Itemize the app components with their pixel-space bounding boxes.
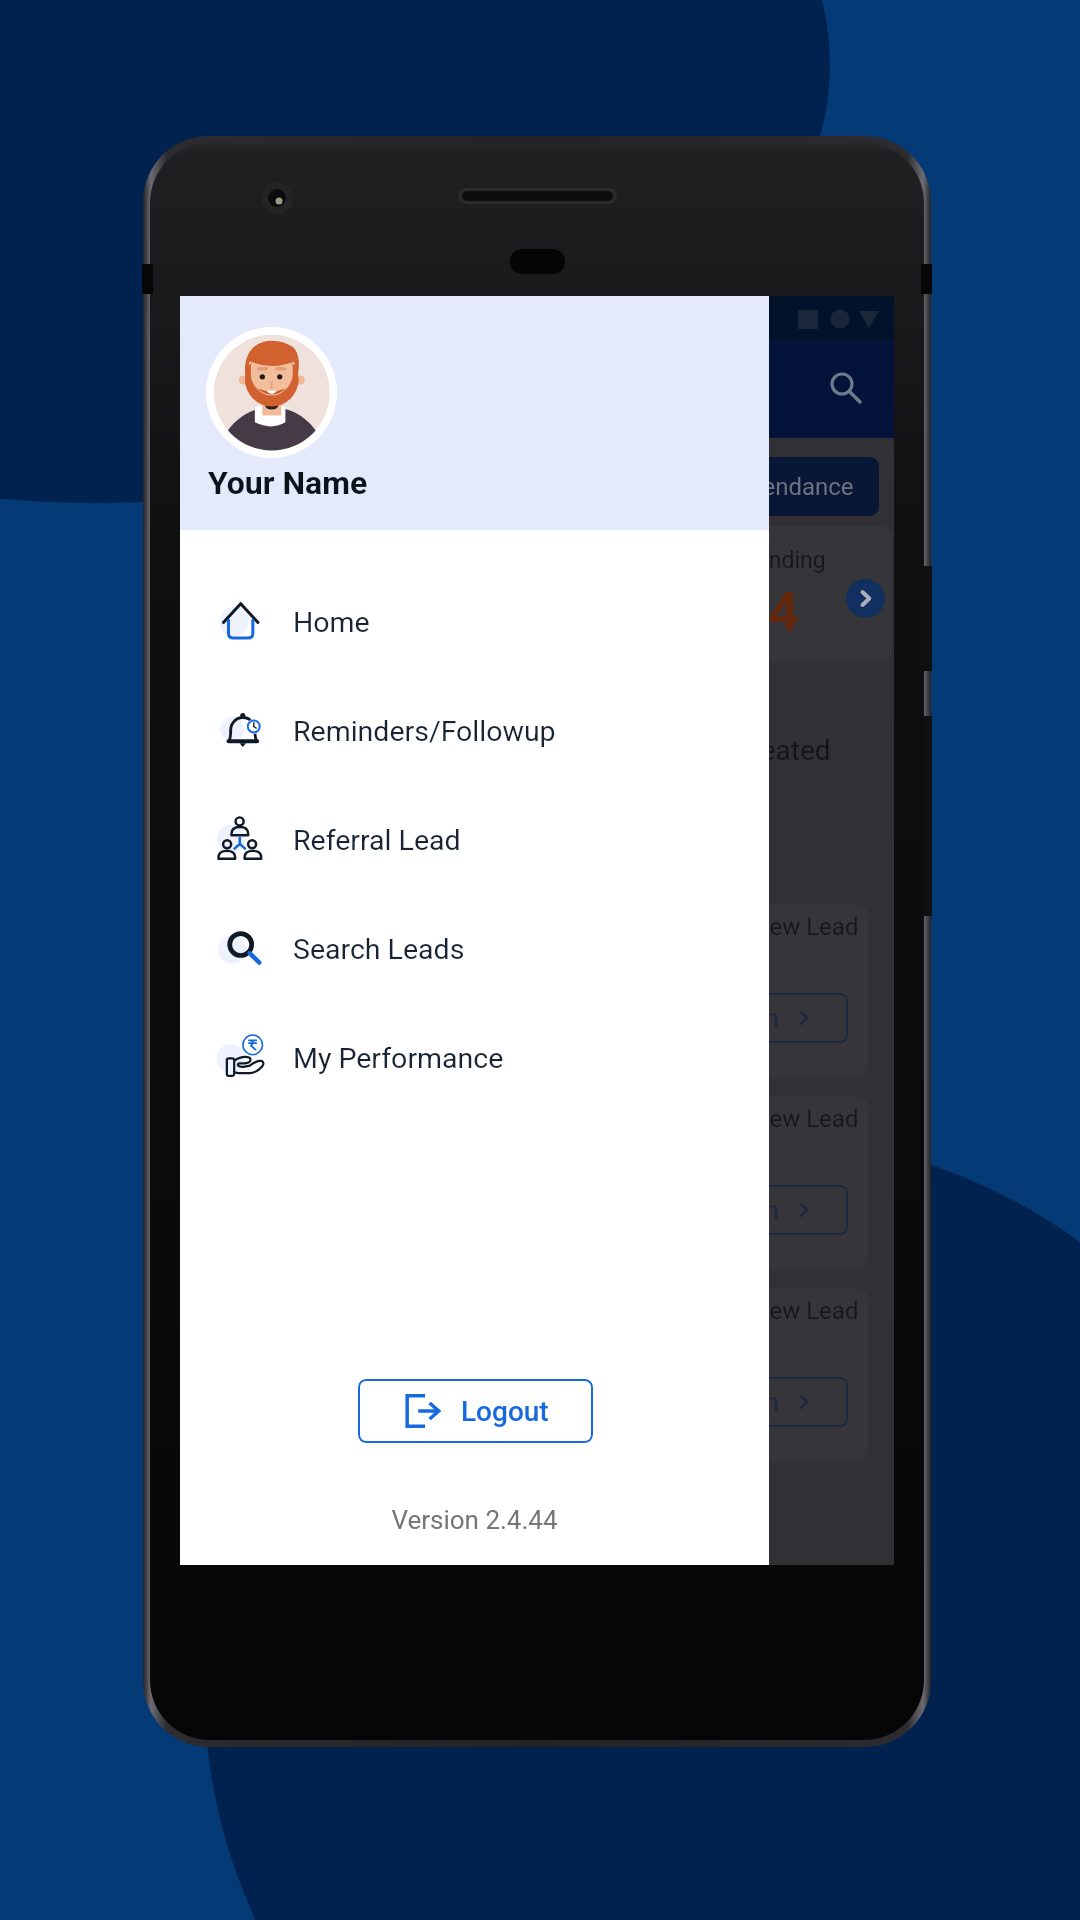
button[interactable]: Search [820, 358, 872, 410]
button[interactable]: Status : New Lead [206, 1288, 868, 1461]
staticText: Status : New Lead [666, 1297, 859, 1325]
button[interactable]: Open leads [846, 579, 885, 618]
staticText: Take Action [648, 1004, 779, 1033]
staticText: Recently Created [620, 734, 831, 767]
staticText: Take Action [648, 1388, 779, 1417]
staticText: 4 [768, 580, 799, 643]
staticText: View Appointment [214, 1500, 459, 1535]
staticText: Total Leads pending [619, 547, 826, 574]
button[interactable]: Search Leads [180, 895, 769, 1004]
staticText: Take Action [648, 1196, 779, 1225]
button[interactable]: Total Leads pending [190, 526, 892, 663]
button[interactable]: Reminders/Followup [180, 677, 769, 786]
staticText: Your Name [208, 464, 368, 502]
button[interactable]: Take Action [628, 993, 848, 1043]
button[interactable]: View Appointment [206, 1480, 900, 1554]
button[interactable]: Referral Lead [180, 786, 769, 895]
staticText: Search Leads [293, 933, 465, 966]
staticText: Version 2.4.44 [180, 1505, 769, 1535]
staticText: Status : New Lead [666, 913, 859, 941]
staticText: My Performance [293, 1042, 504, 1075]
staticText: Referral Lead [293, 824, 461, 857]
button[interactable]: Take Action [628, 1185, 848, 1235]
button[interactable]: My Performance [180, 1004, 769, 1113]
button[interactable]: Take Action [628, 1377, 848, 1427]
button[interactable]: Logout [358, 1379, 593, 1443]
staticText: Status : New Lead [666, 1105, 859, 1133]
staticText: Logout [461, 1395, 549, 1428]
staticText: Home [293, 606, 370, 639]
button[interactable]: Home [180, 568, 769, 677]
staticText: Mark Attendance [671, 473, 854, 501]
button[interactable]: Mark Attendance [645, 457, 879, 516]
staticText: Reminders/Followup [293, 715, 556, 748]
button[interactable]: Status : New Lead [206, 904, 868, 1077]
button[interactable]: Status : New Lead [206, 1096, 868, 1269]
